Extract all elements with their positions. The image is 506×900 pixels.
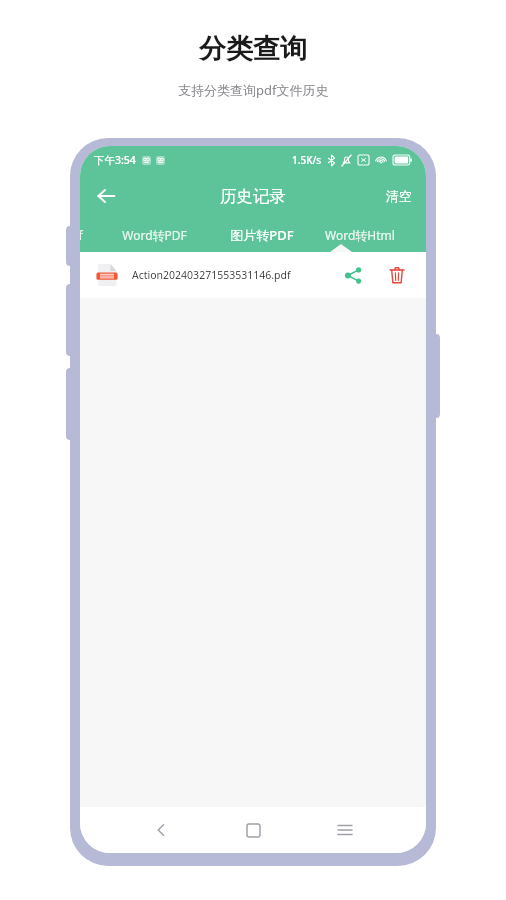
staticText: Word转PDF xyxy=(122,227,187,243)
staticText: 支持分类查询pdf文件历史 xyxy=(178,81,329,99)
button[interactable]: Word转Html xyxy=(316,218,404,252)
button[interactable]: Recents xyxy=(323,808,367,852)
button[interactable]: Home xyxy=(231,808,275,852)
staticText: 历史记录 xyxy=(220,186,286,207)
staticText: 图片转PDF xyxy=(230,226,294,244)
button[interactable]: 清空 xyxy=(372,178,426,214)
button[interactable]: Word转PDF xyxy=(100,218,208,252)
staticText: 清空 xyxy=(386,188,412,204)
button[interactable]: Share xyxy=(338,260,368,290)
staticText: Word转Html xyxy=(325,227,395,243)
staticText: Action202403271553531146.pdf xyxy=(132,268,338,282)
button[interactable]: Back xyxy=(139,808,183,852)
staticText: 分类查询 xyxy=(199,32,307,66)
button[interactable]: if xyxy=(80,218,100,252)
staticText: 下午3:54 xyxy=(94,153,136,167)
button[interactable]: Delete xyxy=(382,260,412,290)
button[interactable]: Back xyxy=(86,176,126,216)
button[interactable]: 图片转PDF xyxy=(208,218,316,252)
staticText: if xyxy=(80,227,83,243)
staticText: 1.5K/s xyxy=(292,153,322,167)
button[interactable]: Action202403271553531146.pdf xyxy=(80,252,426,298)
